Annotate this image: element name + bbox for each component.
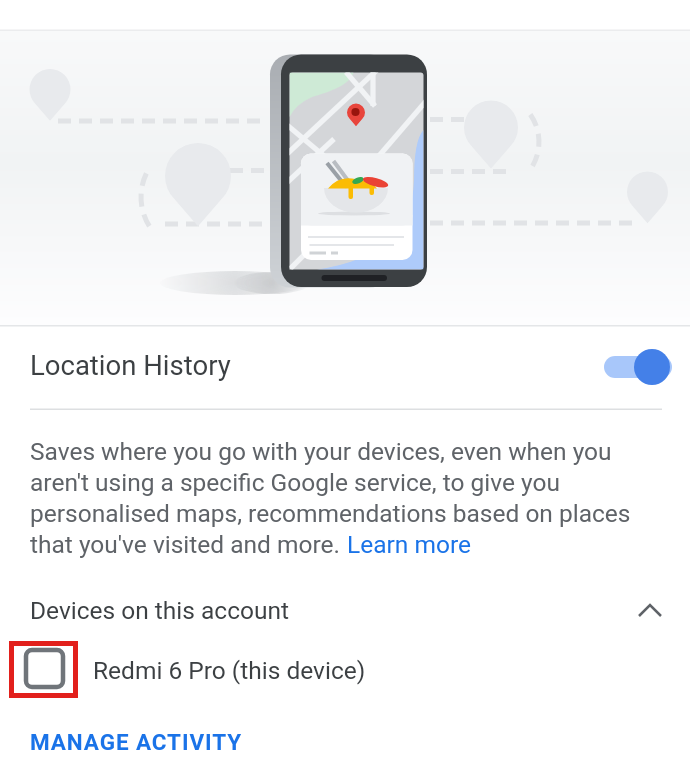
button[interactable]: MANAGE ACTIVITY: [18, 718, 230, 762]
staticText: Devices on this account: [30, 596, 290, 625]
button[interactable]: Devices on this account: [0, 588, 690, 630]
staticText: personalised maps, recommendations based…: [30, 499, 631, 528]
staticText: Redmi 6 Pro (this device): [93, 656, 366, 685]
button[interactable]: Location History: [0, 340, 690, 392]
staticText: aren't using a specific Google service, …: [30, 468, 560, 497]
staticText: Saves where you go with your devices, ev…: [30, 437, 612, 466]
staticText: Location History: [30, 349, 231, 381]
staticText: that you've visited and more.: [30, 530, 347, 559]
button[interactable]: Learn more: [347, 530, 471, 559]
button[interactable]: Redmi 6 Pro (this device): [0, 640, 690, 696]
staticText: MANAGE ACTIVITY: [30, 729, 242, 755]
